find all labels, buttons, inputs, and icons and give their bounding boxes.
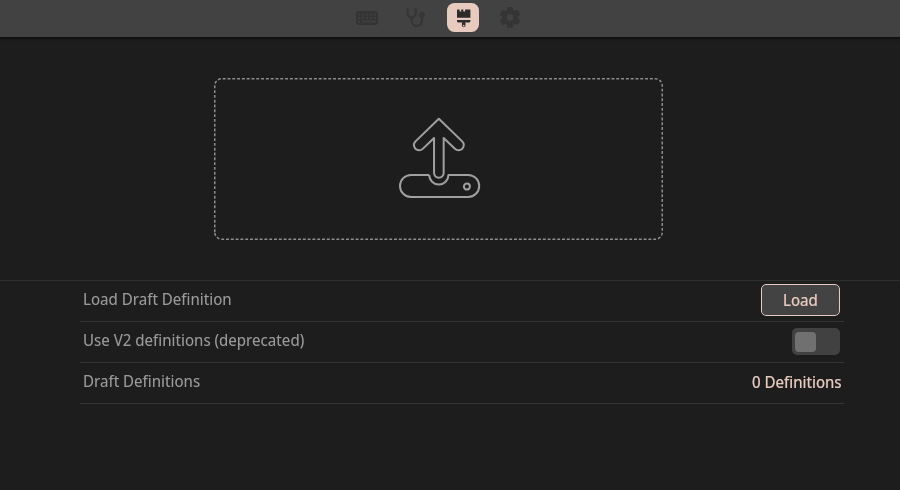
staticText: Load [783, 289, 818, 311]
button[interactable]: Load Draft Definition [80, 281, 844, 321]
button[interactable]: Keyboard [351, 3, 383, 32]
button[interactable]: Draft Definitions [80, 363, 844, 403]
button[interactable]: Use V2 definitions (deprecated) [80, 322, 844, 362]
staticText: 0 Definitions [752, 371, 842, 393]
button[interactable]: Theme [447, 3, 479, 32]
staticText: Use V2 definitions (deprecated) [83, 329, 305, 351]
button[interactable]: Diagnostics [399, 3, 431, 32]
staticText: Draft Definitions [83, 370, 201, 392]
button[interactable]: Load [761, 284, 840, 316]
staticText: Load Draft Definition [83, 288, 232, 310]
button[interactable]: Upload definition file [214, 78, 663, 240]
button[interactable]: Settings [494, 3, 526, 32]
button[interactable]: Use V2 definitions toggle [792, 328, 840, 355]
